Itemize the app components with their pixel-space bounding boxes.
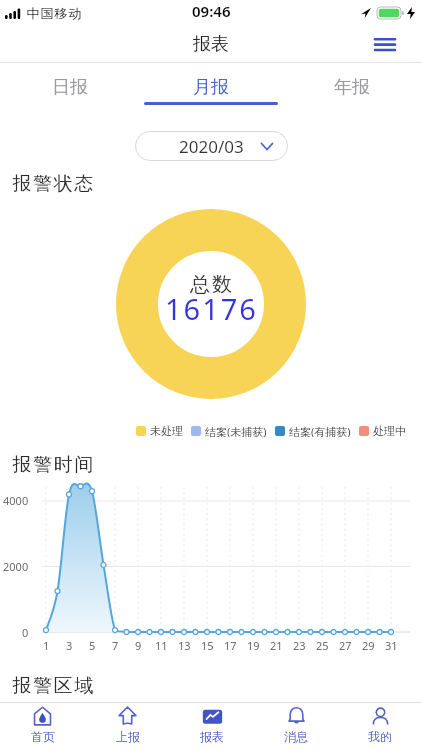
button[interactable]: 消息 — [254, 703, 338, 750]
staticText: 16176 — [165, 289, 258, 328]
staticText: 15 — [201, 638, 214, 653]
staticText: 2020/03 — [179, 135, 244, 158]
staticText: 我的 — [368, 729, 392, 744]
button[interactable]: 月报 — [140, 63, 281, 105]
staticText: 报警时间 — [12, 453, 94, 475]
staticText: 报警区域 — [12, 674, 94, 696]
staticText: 上报 — [116, 729, 140, 744]
button[interactable]: 年报 — [281, 63, 422, 105]
staticText: 3 — [66, 638, 73, 653]
staticText: 25 — [316, 638, 329, 653]
button[interactable]: 2020/03 — [135, 131, 288, 161]
staticText: 29 — [362, 638, 375, 653]
staticText: 27 — [339, 638, 352, 653]
staticText: 月报 — [193, 76, 229, 99]
staticText: 年报 — [334, 76, 370, 99]
staticText: 1 — [43, 638, 50, 653]
staticText: 报警状态 — [12, 172, 94, 194]
staticText: 首页 — [31, 729, 55, 744]
staticText: 9 — [135, 638, 142, 653]
staticText: 结案(有捕获) — [289, 424, 351, 437]
staticText: 2000 — [3, 559, 29, 574]
staticText: 处理中 — [373, 424, 406, 437]
staticText: 13 — [178, 638, 191, 653]
staticText: 报表 — [193, 33, 229, 56]
staticText: 结案(未捕获) — [205, 424, 267, 437]
staticText: 总数 — [189, 272, 233, 297]
button[interactable]: 首页 — [0, 703, 85, 750]
button[interactable]: 报表 — [170, 703, 254, 750]
staticText: 19 — [247, 638, 260, 653]
staticText: 未处理 — [150, 424, 183, 437]
staticText: 5 — [89, 638, 96, 653]
staticText: 11 — [155, 638, 168, 653]
staticText: 09:46 — [192, 1, 231, 21]
staticText: 4000 — [3, 493, 29, 508]
button[interactable]: 我的 — [338, 703, 422, 750]
staticText: 7 — [112, 638, 119, 653]
staticText: 31 — [385, 638, 398, 653]
staticText: 21 — [270, 638, 283, 653]
staticText: 报表 — [200, 729, 224, 744]
staticText: 中国移动 — [26, 5, 82, 21]
staticText: 日报 — [52, 76, 88, 99]
staticText: 17 — [224, 638, 237, 653]
button[interactable]: 日报 — [0, 63, 140, 105]
staticText: 消息 — [284, 729, 308, 744]
button[interactable] — [375, 38, 395, 52]
staticText: 23 — [293, 638, 306, 653]
staticText: 0 — [22, 625, 29, 640]
button[interactable]: 上报 — [85, 703, 170, 750]
